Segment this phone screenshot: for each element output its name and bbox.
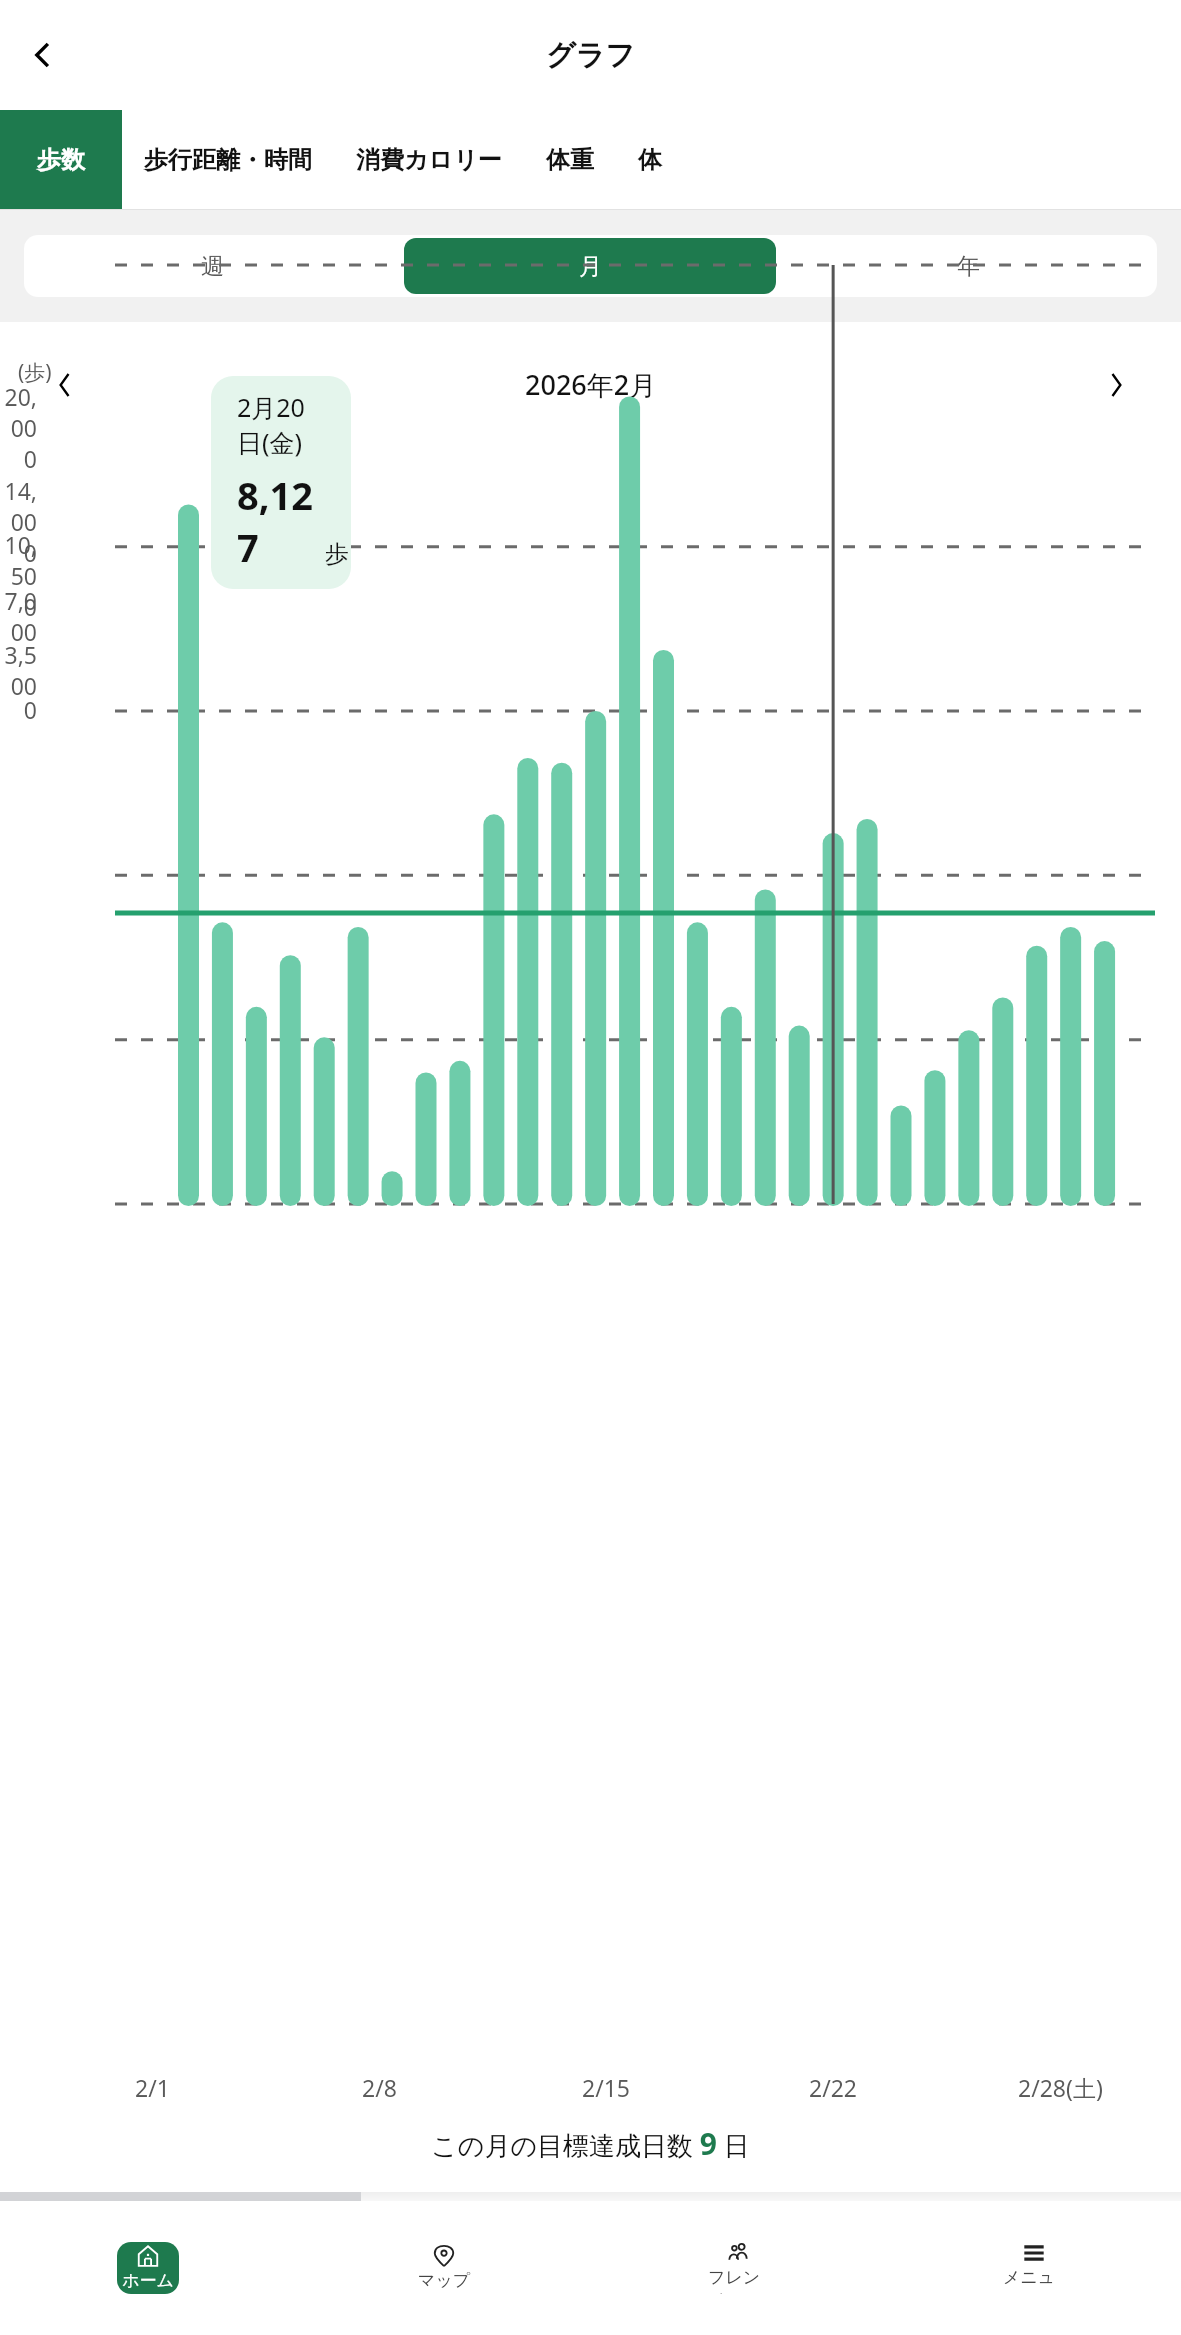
staticText: 14,000: [0, 475, 37, 568]
staticText: 年: [957, 252, 980, 281]
staticText: (歩): [18, 358, 52, 387]
staticText: 体重: [546, 145, 594, 175]
staticText: 3,500: [0, 639, 37, 701]
staticText: 2026年2月: [525, 366, 657, 403]
staticText: 体: [638, 145, 662, 175]
staticText: マップ: [418, 2270, 471, 2291]
staticText: 2月20日(金): [237, 390, 325, 459]
button[interactable]: メニュー: [1003, 2242, 1065, 2294]
button[interactable]: マップ: [413, 2242, 475, 2294]
staticText: 7,000: [0, 585, 37, 647]
staticText: 歩行距離・時間: [144, 145, 312, 175]
button[interactable]: 年: [782, 238, 1154, 294]
staticText: 2/22: [809, 2072, 858, 2103]
staticText: この月の目標達成日数 9 日: [0, 2123, 1181, 2164]
staticText: 2/8: [362, 2072, 397, 2103]
staticText: 歩数: [37, 145, 85, 175]
staticText: グラフ: [546, 37, 636, 74]
staticText: ホーム: [122, 2270, 174, 2291]
staticText: 8,127: [237, 469, 325, 573]
button[interactable]: 歩行距離・時間: [144, 110, 312, 209]
staticText: 0: [0, 694, 37, 725]
staticText: 2/15: [582, 2072, 631, 2103]
button[interactable]: Back: [14, 27, 70, 83]
button[interactable]: 体重: [546, 110, 594, 209]
button[interactable]: 消費カロリー: [356, 110, 502, 209]
button[interactable]: Previous month: [0, 322, 130, 447]
staticText: 2/28(土): [1018, 2072, 1103, 2103]
button[interactable]: 月: [404, 238, 776, 294]
button[interactable]: 歩数: [0, 110, 122, 209]
button[interactable]: 体: [638, 110, 662, 209]
button[interactable]: Next month: [1051, 322, 1181, 447]
staticText: 2/1: [135, 2072, 170, 2103]
staticText: 10,500: [0, 529, 37, 622]
button[interactable]: ホーム: [117, 2242, 179, 2294]
staticText: フレンド: [708, 2267, 770, 2294]
staticText: 週: [201, 252, 224, 281]
staticText: 月: [579, 252, 602, 281]
staticText: 消費カロリー: [356, 145, 502, 175]
staticText: メニュー: [1003, 2267, 1065, 2294]
button[interactable]: 週: [27, 238, 398, 294]
button[interactable]: フレンド: [708, 2242, 770, 2294]
staticText: 20,000: [0, 381, 37, 474]
